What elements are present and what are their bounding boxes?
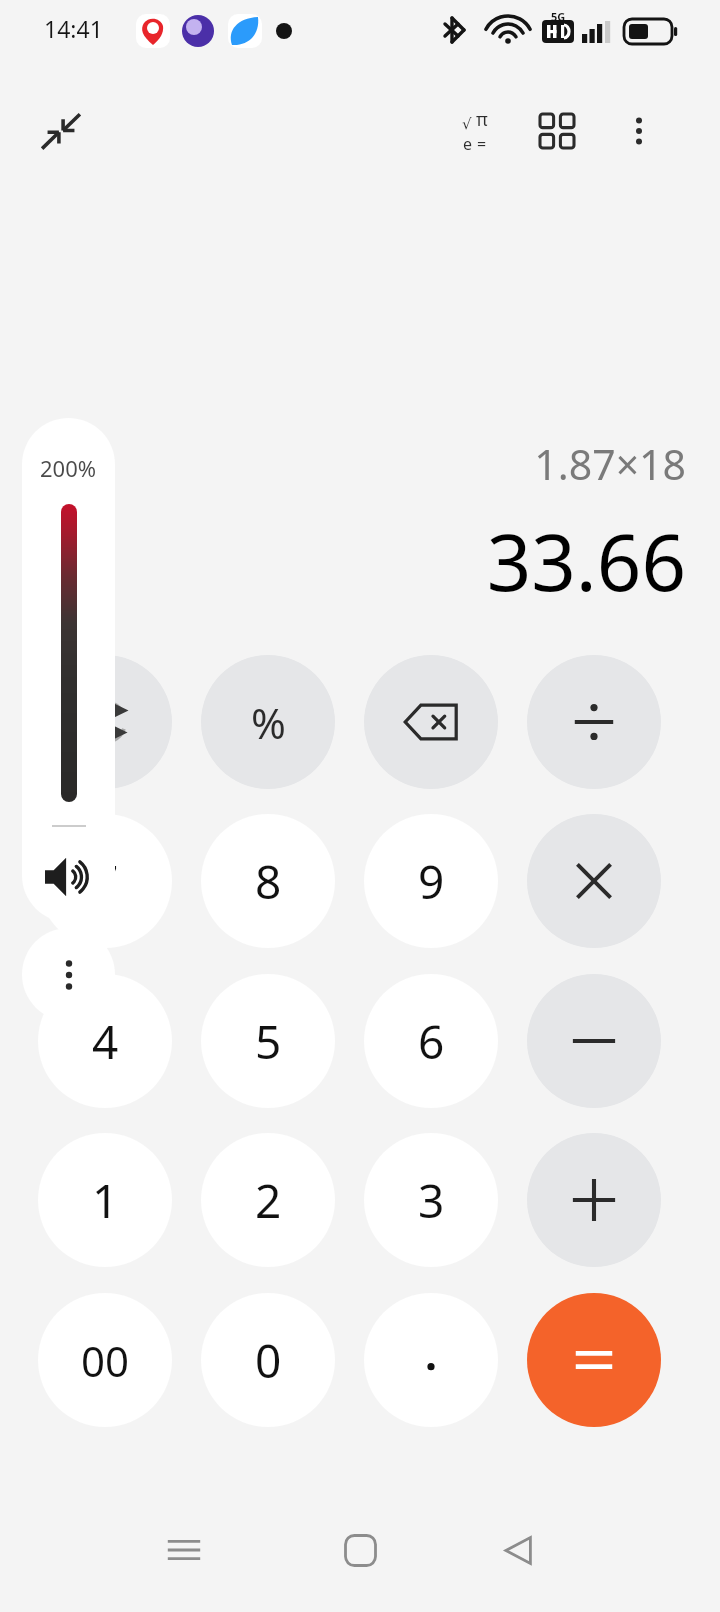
staticText: = [477,133,487,155]
button[interactable]: Subtract [527,974,661,1108]
button[interactable]: 8 [201,814,335,948]
button[interactable]: 7 [38,814,172,948]
button[interactable]: 00 [38,1293,172,1427]
staticText: 5G [551,9,566,24]
staticText: 33.66 [486,508,686,614]
button[interactable]: Converters [520,94,594,168]
button[interactable]: Equals [527,1293,661,1427]
staticText: 7 [92,850,119,913]
staticText: 4 [92,1010,119,1073]
button[interactable]: Scientific calculator [438,94,512,168]
button[interactable]: Volume settings [22,928,115,1021]
button[interactable]: Home [318,1508,402,1592]
staticText: 5 [255,1010,282,1073]
staticText: 2 [255,1169,282,1232]
button[interactable]: 2 [201,1133,335,1267]
button[interactable]: 5 [201,974,335,1108]
button[interactable]: Decimal point [364,1293,498,1427]
button[interactable]: Clear [38,655,172,789]
staticText: 6 [418,1010,445,1073]
staticText: 1.87×18 [534,436,686,492]
staticText: 8 [255,850,282,913]
staticText: e [463,133,473,155]
staticText: π [476,107,488,132]
button[interactable]: Add [527,1133,661,1267]
button[interactable]: 0 [201,1293,335,1427]
staticText: 9 [418,850,445,913]
button[interactable]: 6 [364,974,498,1108]
button[interactable]: 3 [364,1133,498,1267]
staticText: 1 [92,1169,119,1232]
button[interactable]: Exit fullscreen [24,94,98,168]
button[interactable]: 9 [364,814,498,948]
staticText: 14:41 [44,13,103,44]
button[interactable]: Back [476,1508,560,1592]
button[interactable]: % [201,655,335,789]
staticText: √ [462,115,472,132]
button[interactable]: Divide [527,655,661,789]
staticText: 00 [81,1332,130,1389]
button[interactable]: Recent apps [142,1508,226,1592]
staticText: 3 [418,1169,445,1232]
button[interactable]: Multiply [527,814,661,948]
button[interactable]: 4 [38,974,172,1108]
button[interactable]: 1 [38,1133,172,1267]
staticText: 0 [255,1329,282,1392]
staticText: 200% [40,453,97,483]
button[interactable]: More options [602,94,676,168]
button[interactable]: Backspace [364,655,498,789]
staticText: % [251,694,286,751]
